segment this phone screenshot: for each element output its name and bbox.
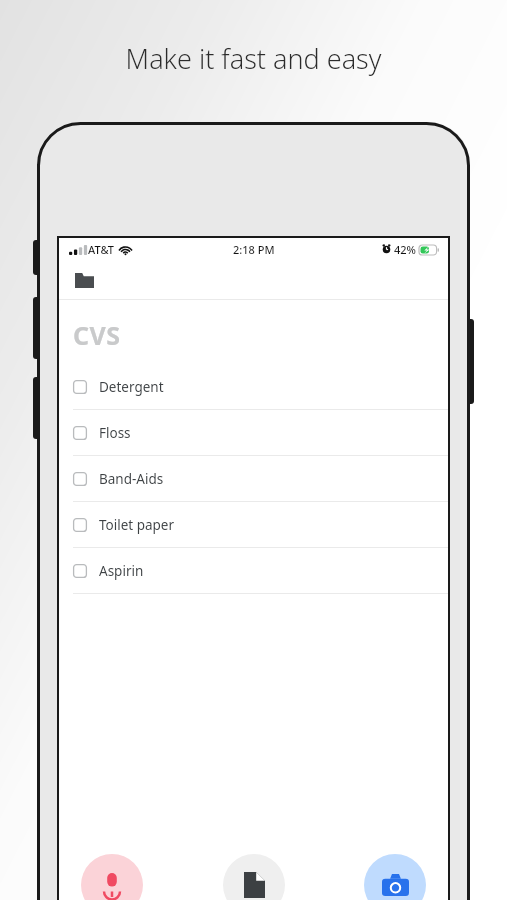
- button[interactable]: Record voice note: [81, 854, 143, 900]
- staticText: Floss: [99, 424, 131, 442]
- staticText: 2:18 PM: [233, 242, 275, 257]
- staticText: Make it fast and easy: [0, 40, 507, 77]
- staticText: Band-Aids: [99, 470, 164, 488]
- button[interactable]: Aspirin: [59, 548, 448, 594]
- staticText: Detergent: [99, 378, 164, 396]
- button[interactable]: Toilet paper: [59, 502, 448, 548]
- button[interactable]: Add document: [223, 854, 285, 900]
- staticText: AT&T: [88, 242, 115, 257]
- staticText: 42%: [394, 242, 416, 257]
- button[interactable]: Detergent: [59, 364, 448, 410]
- staticText: CVS: [73, 318, 121, 352]
- button[interactable]: Take photo: [364, 854, 426, 900]
- button[interactable]: Folders: [69, 265, 99, 295]
- button[interactable]: Band-Aids: [59, 456, 448, 502]
- button[interactable]: Floss: [59, 410, 448, 456]
- staticText: Toilet paper: [99, 516, 175, 534]
- staticText: Aspirin: [99, 562, 144, 580]
